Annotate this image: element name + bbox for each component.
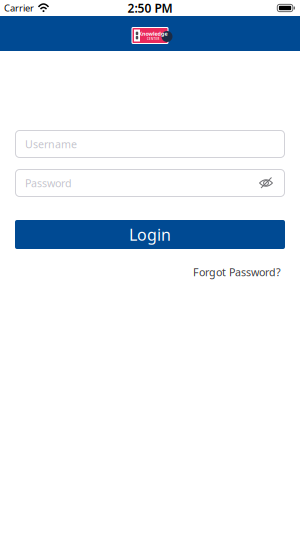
staticText: Username [25, 137, 77, 151]
staticText: Login [129, 224, 171, 245]
staticText: C E N T E R [144, 39, 168, 46]
staticText: Knowledge [127, 25, 185, 39]
button[interactable]: Forgot Password? [193, 265, 281, 279]
staticText: Forgot Password? [193, 265, 281, 279]
button[interactable]: Login [15, 220, 285, 249]
staticText: Password [25, 176, 72, 190]
staticText: Carrier [4, 2, 34, 14]
button[interactable]: Password [15, 169, 285, 197]
staticText: 2:50 PM [127, 0, 172, 16]
button[interactable]: Username [15, 130, 285, 158]
